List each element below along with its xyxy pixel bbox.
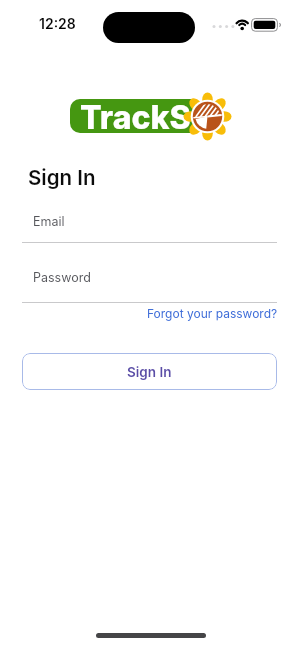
staticText: TrackS (80, 99, 191, 132)
staticText: Sign In (28, 165, 96, 190)
staticText: 12:28 (39, 15, 76, 32)
staticText: Sign In (127, 364, 172, 380)
staticText: Email (33, 214, 65, 229)
staticText: Password (33, 270, 91, 285)
button[interactable]: Sign In (22, 353, 277, 390)
button[interactable]: Password (22, 264, 277, 303)
button[interactable]: Email (22, 208, 277, 243)
staticText: Forgot your password? (147, 306, 278, 321)
button[interactable]: Forgot your password? (147, 306, 278, 321)
